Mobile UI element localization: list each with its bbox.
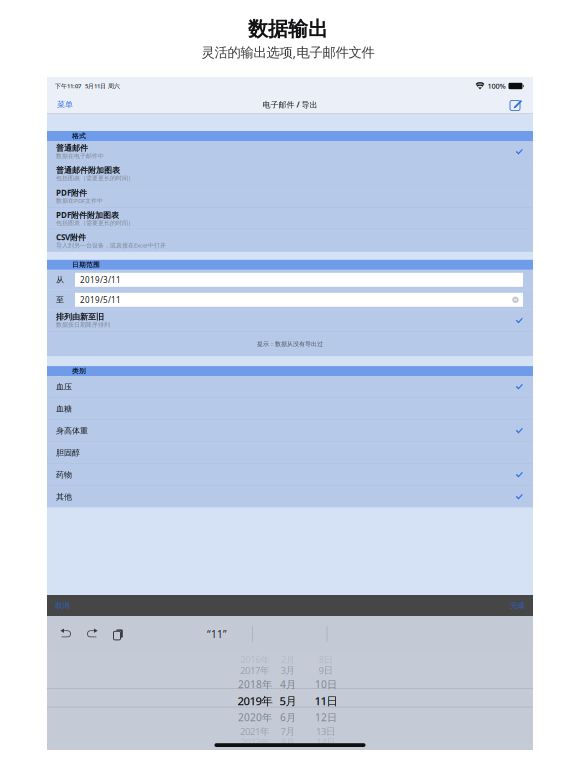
staticText: 包括图表（需要更长的时间）: [56, 219, 134, 227]
button[interactable]: CSV附件: [47, 230, 533, 252]
staticText: 12日: [315, 710, 337, 724]
button[interactable]: 其他: [47, 486, 533, 507]
button[interactable]: 新建: [510, 97, 524, 111]
button[interactable]: 完成: [507, 597, 527, 614]
staticText: 2020年: [238, 710, 272, 724]
staticText: 药物: [56, 470, 72, 480]
staticText: “11”: [207, 627, 227, 641]
staticText: 身高体重: [56, 426, 88, 436]
button[interactable]: 菜单: [55, 95, 75, 114]
staticText: 其他: [56, 492, 72, 502]
button[interactable]: 胆固醇: [47, 442, 533, 463]
staticText: 4月: [280, 677, 296, 691]
staticText: 2018年: [238, 677, 272, 691]
staticText: 2021年: [240, 725, 270, 738]
staticText: 10日: [315, 677, 337, 691]
staticText: 2019/3/11: [80, 274, 121, 285]
staticText: 提示：数据从没有导出过: [257, 340, 323, 348]
button[interactable]: PDF附件: [47, 186, 533, 207]
staticText: 血糖: [56, 404, 72, 414]
button[interactable]: 撤销: [60, 628, 72, 639]
staticText: 8月: [281, 736, 295, 748]
button[interactable]: 药物: [47, 464, 533, 485]
button[interactable]: 普通邮件附加图表: [47, 163, 533, 185]
staticText: 排列由新至旧: [56, 312, 104, 322]
staticText: 2019年: [237, 693, 272, 708]
staticText: 14日: [316, 736, 335, 748]
staticText: 从: [56, 275, 64, 285]
button[interactable]: 粘贴: [112, 628, 122, 639]
staticText: 格式: [72, 132, 86, 140]
staticText: 2016年: [240, 653, 269, 666]
button[interactable]: 取消: [52, 597, 72, 614]
button[interactable]: 身高体重: [47, 420, 533, 441]
staticText: 数据按日期降序排列: [56, 321, 110, 329]
staticText: PDF附件: [56, 187, 87, 198]
staticText: 2月: [281, 653, 295, 666]
staticText: 电子邮件 / 导出: [262, 99, 317, 110]
staticText: 3月: [280, 664, 295, 677]
staticText: 2017年: [240, 664, 270, 677]
staticText: 普通邮件: [56, 143, 88, 153]
staticText: 100%: [487, 81, 505, 91]
staticText: 包括图表（需要更长的时间）: [56, 174, 134, 182]
staticText: 数据在电子邮件中: [56, 152, 104, 160]
staticText: 数据在PDF文件中: [56, 196, 103, 205]
staticText: 血压: [56, 382, 72, 392]
button[interactable]: 排列由新至旧: [47, 310, 533, 331]
staticText: 13日: [316, 725, 336, 738]
staticText: 7月: [280, 725, 295, 738]
staticText: 9日: [318, 664, 333, 677]
staticText: 8日: [319, 653, 333, 666]
staticText: CSV附件: [56, 232, 86, 243]
staticText: 普通邮件附加图表: [56, 165, 120, 175]
staticText: 灵活的输出选项,电子邮件文件: [201, 43, 374, 61]
staticText: 11日: [314, 693, 337, 708]
staticText: 日期范围: [72, 261, 100, 269]
button[interactable]: PDF附件附加图表: [47, 208, 533, 229]
staticText: 6月: [280, 710, 296, 724]
staticText: 胆固醇: [56, 448, 80, 458]
staticText: 菜单: [57, 99, 73, 110]
staticText: 取消: [55, 601, 69, 610]
staticText: 下午11:07 5月11日 周六: [55, 82, 120, 90]
staticText: 5月: [279, 693, 296, 708]
button[interactable]: “11”: [197, 627, 237, 641]
button[interactable]: 普通邮件: [47, 141, 533, 163]
staticText: 数据输出: [248, 16, 328, 42]
button[interactable]: 重做: [86, 628, 98, 639]
staticText: 完成: [510, 601, 524, 610]
staticText: 导入到另一台设备，或直接在Excel中打开: [56, 241, 166, 249]
staticText: PDF附件附加图表: [56, 209, 119, 220]
button[interactable]: 血糖: [47, 398, 533, 419]
staticText: 类别: [72, 367, 86, 375]
staticText: 2019/5/11: [80, 294, 121, 305]
button[interactable]: 血压: [47, 376, 533, 397]
staticText: 2022年: [240, 736, 269, 748]
staticText: 至: [56, 295, 64, 305]
